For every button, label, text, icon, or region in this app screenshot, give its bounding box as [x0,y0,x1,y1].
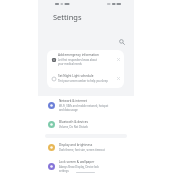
button[interactable]: Add emergency information [47,50,124,69]
staticText: Let first responders know about your med… [58,58,97,66]
staticText: Add emergency information [58,53,99,57]
staticText: Tint your screen amber to help you sleep [58,79,108,83]
button[interactable]: Set Night Light schedule [47,69,124,88]
staticText: Always Show Display, Device lock setting… [59,165,99,173]
staticText: Network & internet [59,99,87,103]
button[interactable]: Network & internet [38,96,134,115]
button[interactable]: Lock screen & wallpaper [38,157,134,176]
staticText: Dark theme, font size, screen timeout [59,148,105,152]
staticText: Lock screen & wallpaper [59,160,95,164]
button[interactable]: Dismiss [115,56,122,63]
button[interactable]: Dismiss [115,75,122,82]
button[interactable]: Bluetooth & devices [38,115,134,134]
staticText: Settings [53,12,82,22]
staticText: Wi-Fi, SIMs and mobile network, hotspot … [59,104,109,112]
button[interactable]: Display and brightness [38,138,134,157]
button[interactable]: Search [116,36,128,48]
staticText: Display and brightness [59,143,93,147]
staticText: Volume, Do Not Disturb [59,125,88,129]
staticText: Bluetooth & devices [59,120,88,124]
staticText: Set Night Light schedule [58,74,94,78]
